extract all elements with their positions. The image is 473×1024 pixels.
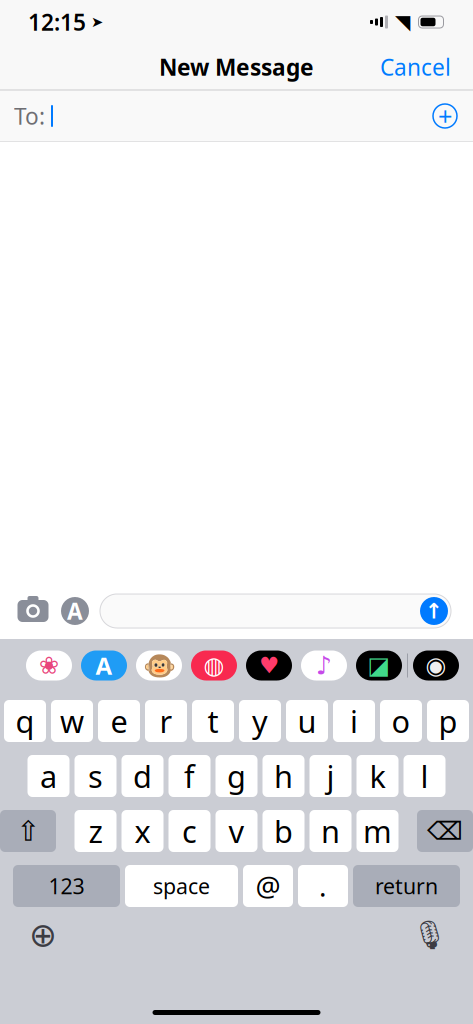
button[interactable]: a (27, 755, 69, 797)
staticText: y (252, 701, 268, 741)
staticText: f (184, 756, 195, 796)
button[interactable]: Delete (417, 810, 473, 852)
button[interactable]: l (403, 755, 445, 797)
staticText: ➤ (91, 14, 103, 30)
button[interactable]: Shift (0, 810, 56, 852)
button[interactable]: ◪ (352, 645, 406, 685)
button[interactable]: y (239, 700, 281, 742)
button[interactable]: 123 (13, 865, 120, 907)
staticText: e (110, 701, 127, 741)
staticText: u (297, 701, 316, 741)
button[interactable]: Dictation (407, 913, 453, 957)
staticText: r (159, 701, 172, 741)
staticText: ⊕ (29, 916, 57, 954)
button[interactable]: t (192, 700, 234, 742)
staticText: 12:15 (28, 7, 86, 37)
staticText: A (95, 650, 112, 681)
staticText: ♥ (259, 653, 279, 678)
staticText: New Message (159, 52, 314, 82)
staticText: t (207, 701, 218, 741)
button[interactable]: v (215, 810, 257, 852)
button[interactable]: Add contact (423, 94, 467, 138)
staticText: 🎙 (412, 919, 448, 951)
button[interactable]: f (168, 755, 210, 797)
staticText: ♪ (316, 651, 332, 680)
staticText: Cancel (380, 52, 451, 82)
staticText: + (438, 99, 452, 133)
button[interactable]: u (286, 700, 328, 742)
button[interactable]: ❀ (22, 645, 76, 685)
button[interactable]: Camera (16, 596, 50, 626)
button[interactable]: b (262, 810, 304, 852)
staticText: g (227, 756, 246, 796)
staticText: p (438, 701, 457, 741)
button[interactable]: q (4, 700, 46, 742)
staticText: a (40, 756, 57, 796)
staticText: @ (255, 867, 280, 905)
button[interactable]: k (356, 755, 398, 797)
staticText: c (182, 811, 197, 851)
staticText: ↑ (425, 599, 443, 623)
staticText: x (134, 811, 150, 851)
staticText: m (363, 811, 392, 851)
button[interactable]: z (74, 810, 116, 852)
staticText: ◍ (203, 652, 224, 679)
staticText: w (60, 701, 84, 741)
staticText: l (420, 756, 428, 796)
button[interactable]: ♪ (297, 645, 351, 685)
staticText: v (228, 811, 244, 851)
staticText: n (321, 811, 340, 851)
staticText: o (391, 701, 410, 741)
staticText: 123 (48, 872, 84, 900)
button[interactable]: 🐵 (132, 645, 186, 685)
button[interactable]: A (77, 645, 131, 685)
button[interactable]: e (98, 700, 140, 742)
staticText: ◪ (367, 652, 390, 679)
button[interactable]: Send (420, 597, 448, 625)
button[interactable]: ◉ (409, 645, 463, 685)
button[interactable]: g (215, 755, 257, 797)
staticText: q (15, 701, 34, 741)
staticText: space (153, 872, 210, 900)
staticText: ⇧ (16, 815, 39, 847)
button[interactable]: Space (125, 865, 238, 907)
button[interactable]: r (145, 700, 187, 742)
button[interactable]: Period (298, 865, 348, 907)
button[interactable]: o (380, 700, 422, 742)
staticText: d (133, 756, 152, 796)
button[interactable]: n (309, 810, 351, 852)
button[interactable]: Apps (60, 596, 90, 626)
staticText: To: (14, 101, 45, 131)
button[interactable]: x (121, 810, 163, 852)
button[interactable]: d (121, 755, 163, 797)
staticText: ◥ (395, 11, 410, 33)
staticText: i (350, 701, 358, 741)
button[interactable]: i (333, 700, 375, 742)
staticText: z (88, 811, 102, 851)
button[interactable]: j (309, 755, 351, 797)
staticText: s (88, 756, 103, 796)
staticText: return (375, 872, 438, 900)
staticText: 🐵 (142, 650, 175, 681)
button[interactable]: s (74, 755, 116, 797)
button[interactable]: h (262, 755, 304, 797)
button[interactable]: c (168, 810, 210, 852)
button[interactable]: Change keyboard (20, 913, 66, 957)
button[interactable]: w (51, 700, 93, 742)
button[interactable]: return (353, 865, 460, 907)
staticText: ❀ (39, 652, 59, 679)
staticText: h (274, 756, 293, 796)
staticText: b (274, 811, 293, 851)
staticText: A (67, 596, 83, 626)
button[interactable]: ♥ (242, 645, 296, 685)
button[interactable]: ◍ (187, 645, 241, 685)
staticText: j (326, 756, 334, 796)
staticText: ◉ (425, 652, 446, 679)
button[interactable]: @ (243, 865, 293, 907)
button[interactable]: m (356, 810, 398, 852)
staticText: k (369, 756, 385, 796)
button[interactable]: Cancel (366, 42, 465, 92)
button[interactable]: p (427, 700, 469, 742)
staticText: . (319, 867, 327, 905)
staticText: ⌫ (427, 817, 463, 845)
